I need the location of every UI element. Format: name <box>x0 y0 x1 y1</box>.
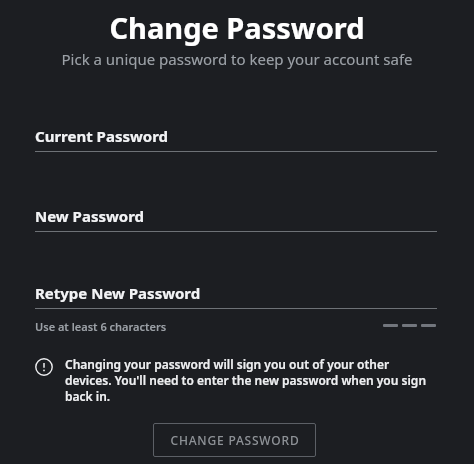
staticText: Change Password <box>0 8 474 47</box>
staticText: Pick a unique password to keep your acco… <box>0 49 474 69</box>
staticText: Retype New Password <box>35 283 201 303</box>
button[interactable]: Retype New Password <box>0 283 474 317</box>
button[interactable]: New Password <box>0 206 474 240</box>
button[interactable]: Current Password <box>0 126 474 160</box>
staticText: CHANGE PASSWORD <box>170 432 300 448</box>
staticText: New Password <box>35 206 145 226</box>
button[interactable]: CHANGE PASSWORD <box>153 423 316 457</box>
staticText: Use at least 6 characters <box>35 319 167 333</box>
staticText: Changing your password will sign you out… <box>65 356 437 404</box>
staticText: Current Password <box>35 126 169 146</box>
